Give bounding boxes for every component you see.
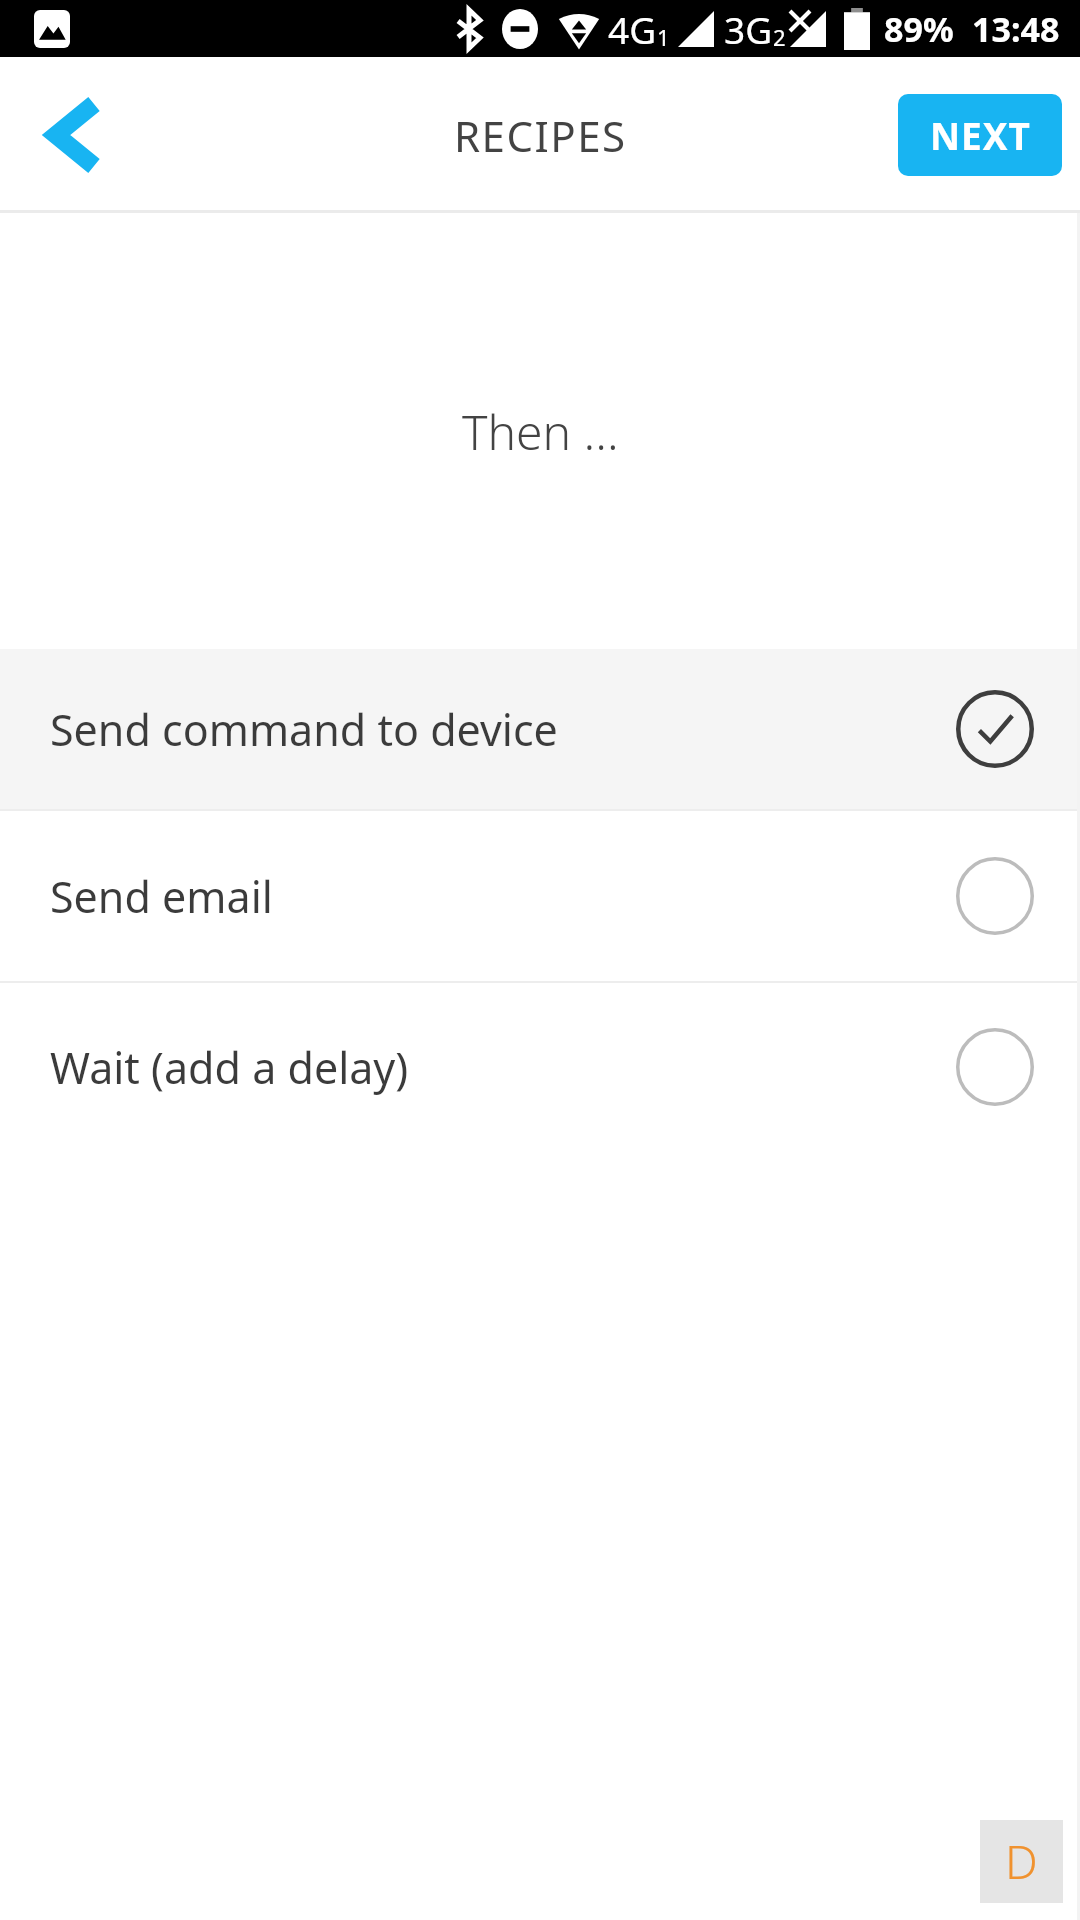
- staticText: 1: [657, 22, 670, 52]
- staticText: 13:48: [972, 6, 1060, 52]
- staticText: 2: [773, 22, 786, 52]
- staticText: Wait (add a delay): [50, 1038, 956, 1097]
- staticText: 4G: [608, 4, 657, 54]
- button[interactable]: Send command to device: [0, 649, 1080, 809]
- staticText: 89%: [884, 6, 954, 52]
- staticText: Send email: [50, 867, 956, 926]
- staticText: Send command to device: [50, 700, 956, 759]
- staticText: RECIPES: [454, 107, 627, 164]
- staticText: Then ...: [462, 399, 619, 464]
- staticText: 3G: [724, 4, 773, 54]
- button[interactable]: Back: [20, 80, 130, 190]
- button[interactable]: Send email: [0, 811, 1080, 981]
- staticText: NEXT: [930, 110, 1031, 160]
- button[interactable]: Wait (add a delay): [0, 983, 1080, 1151]
- button[interactable]: NEXT: [898, 94, 1062, 176]
- staticText: D: [1005, 1830, 1038, 1893]
